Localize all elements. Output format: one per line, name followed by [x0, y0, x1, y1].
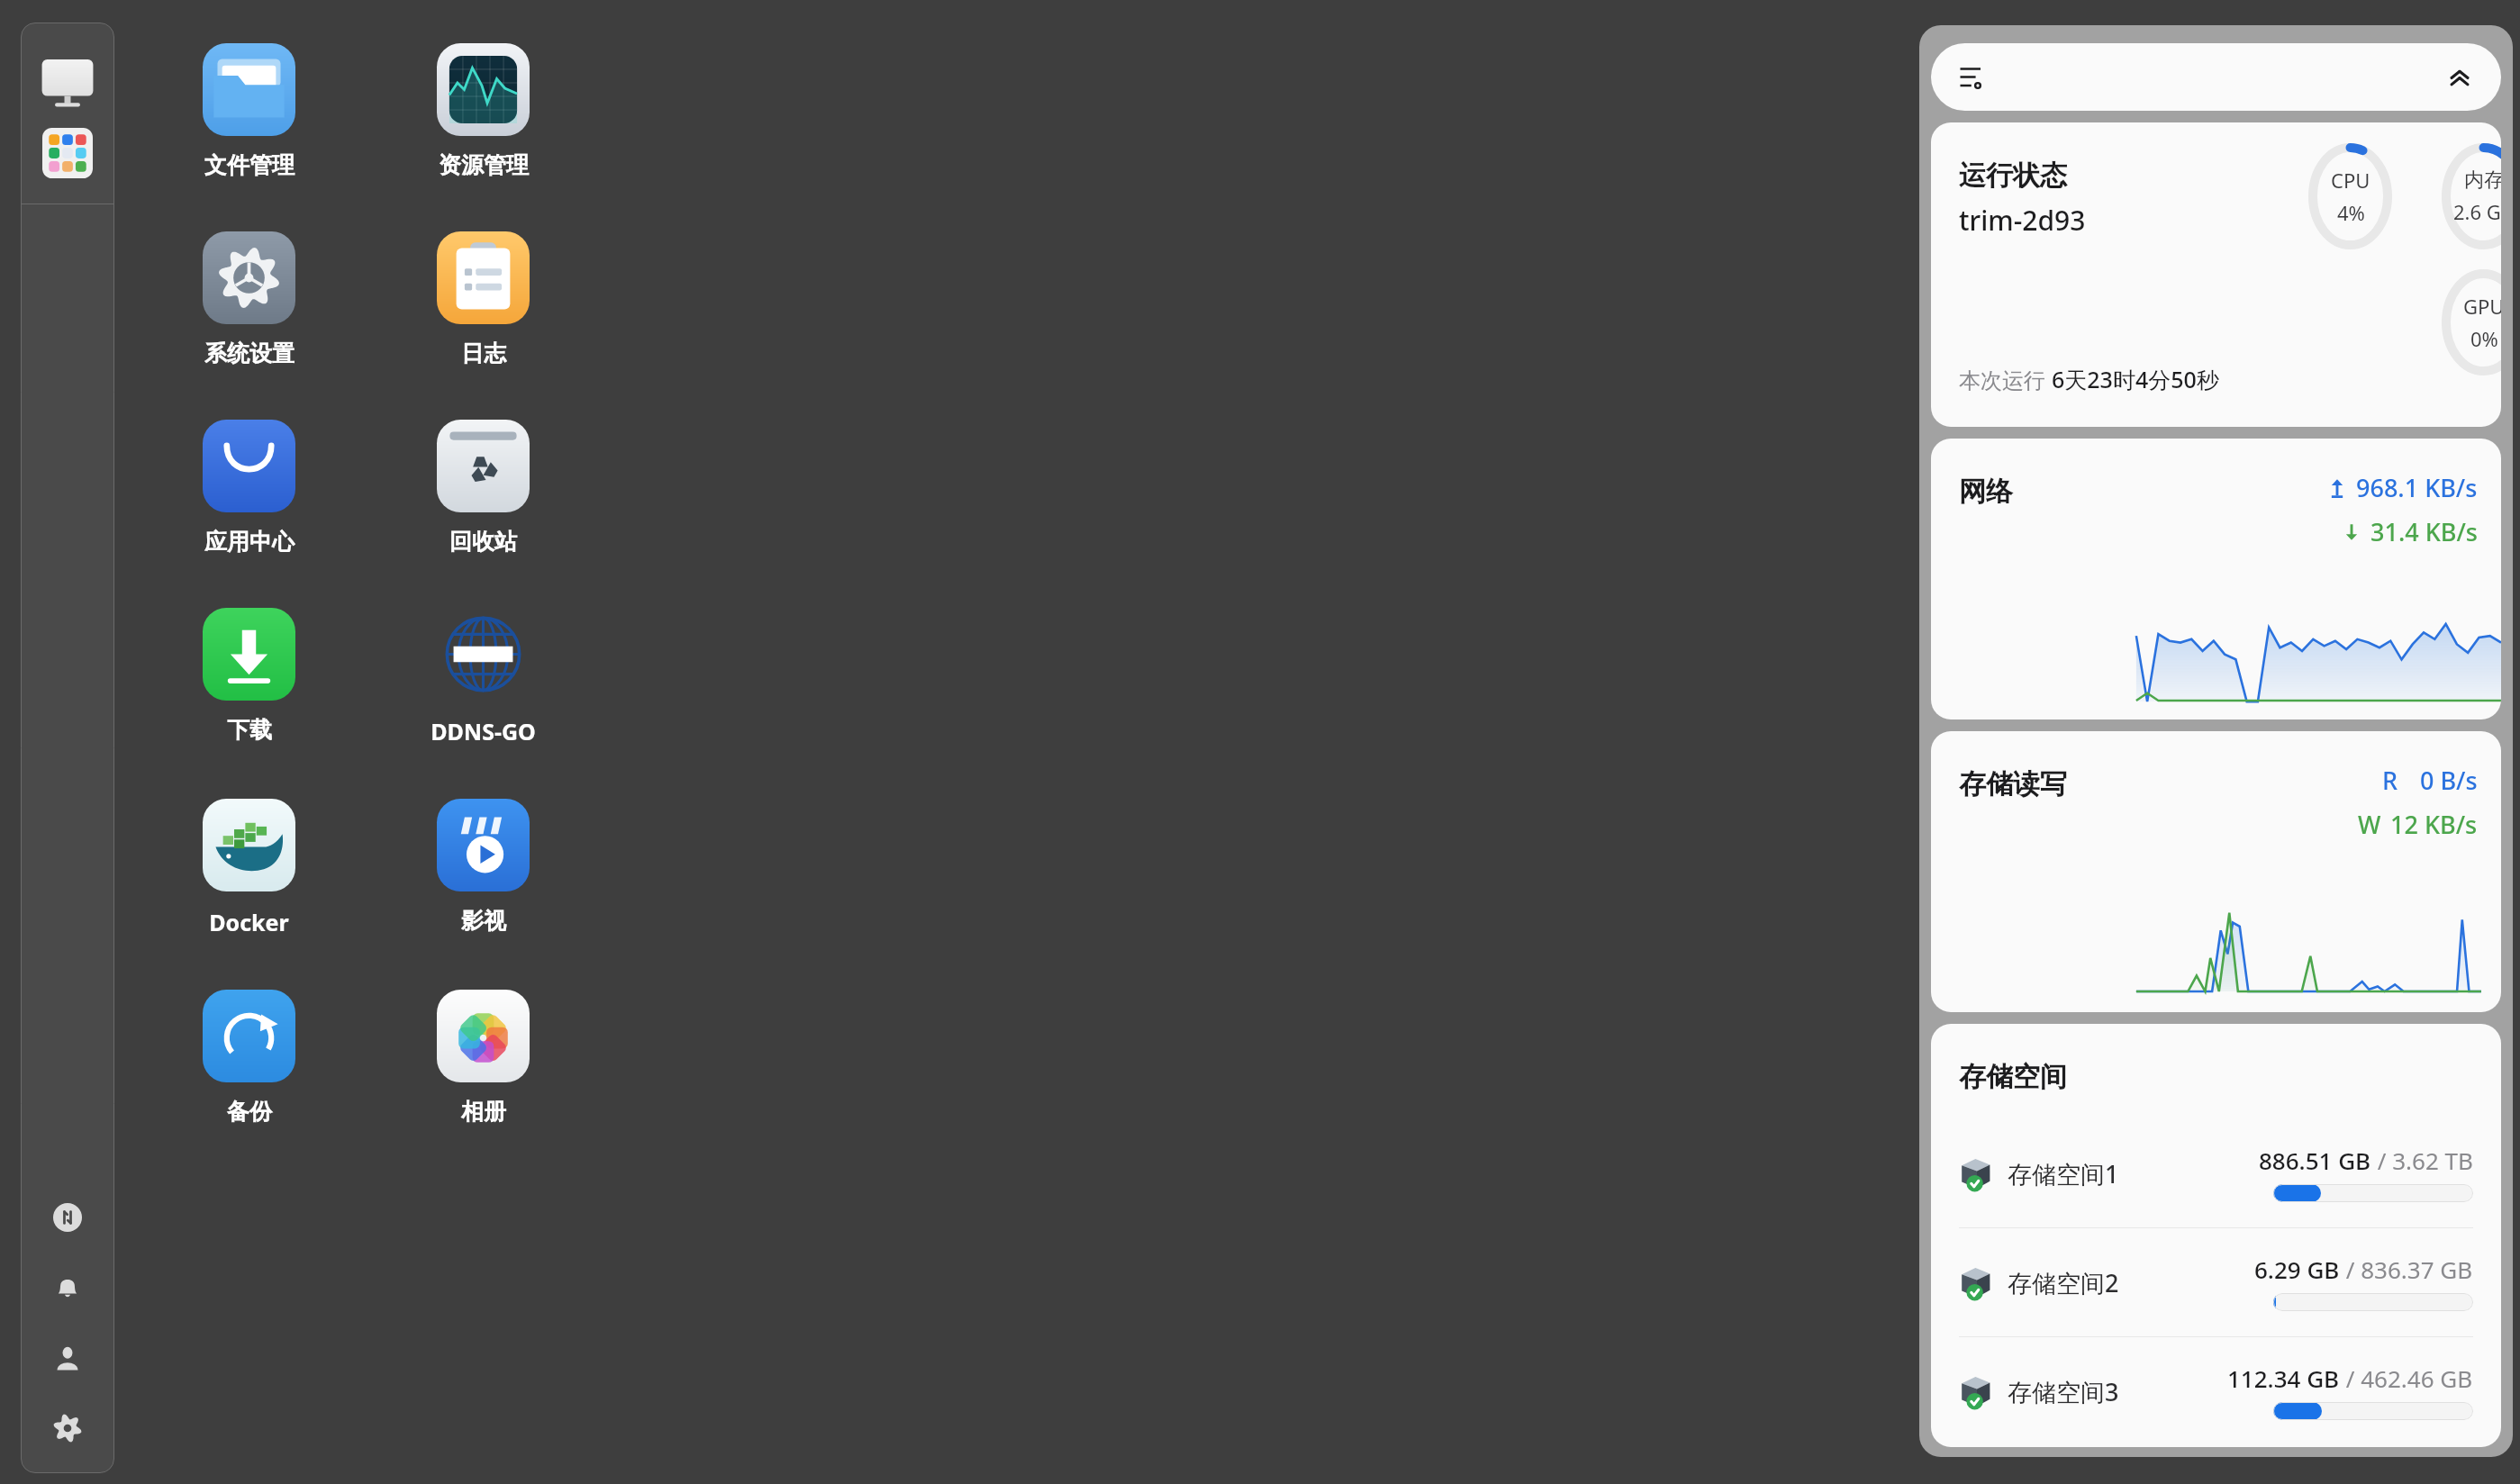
staticText: 日志 [461, 339, 506, 367]
staticText: 资源管理 [439, 151, 529, 179]
button[interactable]: Docker [144, 790, 354, 946]
staticText: 6.29 GB [2254, 1253, 2340, 1285]
staticText: trim-2d93 [1959, 202, 2086, 239]
button[interactable]: DDNS-GO [378, 599, 588, 756]
staticText: 备份 [227, 1098, 272, 1126]
button[interactable]: Collapse [2438, 56, 2481, 99]
staticText: 存储空间 [1959, 1060, 2067, 1094]
staticText: 886.51 GB [2259, 1145, 2371, 1176]
staticText: 6天23时4分50秒 [2052, 364, 2219, 394]
button[interactable]: 下载 [144, 599, 354, 753]
staticText: 存储读写 [1959, 767, 2067, 801]
button[interactable]: 资源管理 [378, 34, 588, 188]
button[interactable]: 影视 [378, 790, 588, 944]
staticText: 968.1 KB/s [2356, 471, 2478, 504]
button[interactable]: 存储空间3 [1931, 1337, 2501, 1445]
button[interactable]: 回收站 [378, 411, 588, 565]
button[interactable]: App launcher [38, 123, 97, 183]
button[interactable]: 文件管理 [144, 34, 354, 188]
button[interactable]: 备份 [144, 981, 354, 1135]
staticText: 相册 [461, 1098, 506, 1126]
button[interactable]: 存储空间1 [1931, 1119, 2501, 1227]
staticText: R [2382, 764, 2398, 797]
staticText: Docker [209, 907, 289, 937]
button[interactable]: 存储读写 [1931, 731, 2501, 1012]
staticText: 本次运行 [1959, 365, 2052, 394]
button[interactable]: 系统设置 [144, 222, 354, 376]
staticText: 31.4 KB/s [2370, 515, 2478, 548]
button[interactable]: 存储空间 [1931, 1024, 2501, 1447]
button[interactable]: Transfer [42, 1192, 93, 1243]
staticText: 4% [2337, 199, 2365, 226]
staticText: 12 KB/s [2390, 808, 2478, 841]
button[interactable]: Notifications [42, 1262, 93, 1313]
staticText: 存储空间2 [2008, 1266, 2119, 1299]
staticText: 存储空间1 [2008, 1157, 2119, 1190]
staticText: 回收站 [449, 528, 517, 556]
button[interactable]: Account [42, 1333, 93, 1383]
staticText: 0% [2470, 325, 2498, 352]
staticText: GPU [2463, 293, 2501, 320]
staticText: 2.6 GB [2453, 198, 2501, 225]
staticText: 112.34 GB [2227, 1362, 2340, 1394]
staticText: W [2358, 808, 2381, 841]
staticText: / 836.37 GB [2340, 1253, 2473, 1285]
staticText: 存储空间3 [2008, 1375, 2119, 1408]
button[interactable]: Settings [42, 1403, 93, 1453]
staticText: 影视 [461, 907, 506, 935]
staticText: 内存 [2464, 167, 2501, 193]
staticText: 网络 [1959, 475, 2013, 509]
button[interactable]: Widget settings [1951, 56, 1994, 99]
staticText: DDNS-GO [431, 716, 536, 747]
button[interactable]: 应用中心 [144, 411, 354, 565]
button[interactable]: 存储空间2 [1931, 1228, 2501, 1336]
button[interactable]: 相册 [378, 981, 588, 1135]
staticText: 文件管理 [204, 151, 295, 179]
staticText: 系统设置 [204, 339, 295, 367]
staticText: CPU [2331, 167, 2370, 194]
staticText: / 3.62 TB [2371, 1145, 2473, 1176]
staticText: 0 B/s [2420, 764, 2478, 797]
staticText: 运行状态 [1959, 158, 2067, 193]
button[interactable]: 网络 [1931, 439, 2501, 719]
button[interactable]: Desktop [38, 56, 97, 115]
button[interactable]: 运行状态 [1931, 122, 2501, 427]
button[interactable]: 日志 [378, 222, 588, 376]
staticText: 应用中心 [204, 528, 295, 556]
staticText: / 462.46 GB [2340, 1362, 2473, 1394]
staticText: 下载 [227, 716, 272, 744]
